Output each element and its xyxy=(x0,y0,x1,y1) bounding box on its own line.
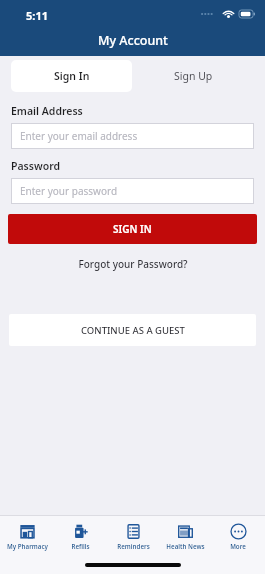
staticText: Password xyxy=(11,159,61,173)
staticText: Forgot your Password? xyxy=(78,257,188,271)
staticText: More xyxy=(230,542,246,550)
staticText: Health News xyxy=(166,542,205,550)
staticText: Enter your password xyxy=(20,184,118,198)
button[interactable]: Enter your email address xyxy=(11,123,254,149)
staticText: 5:11 xyxy=(26,8,48,23)
staticText: SIGN IN xyxy=(113,222,152,236)
button[interactable]: Reminders xyxy=(107,521,159,552)
staticText: My Pharmacy xyxy=(7,542,48,550)
button[interactable]: Enter your password xyxy=(11,178,254,204)
staticText: CONTINUE AS A GUEST xyxy=(81,324,185,337)
staticText: Refills xyxy=(71,542,90,550)
staticText: Sign In xyxy=(54,69,90,83)
button[interactable]: Refills xyxy=(54,521,106,552)
button[interactable]: Forgot your Password? xyxy=(70,255,196,273)
staticText: Reminders xyxy=(117,542,150,550)
button[interactable]: SIGN IN xyxy=(8,214,257,244)
staticText: Sign Up xyxy=(174,69,213,83)
button[interactable]: Sign In xyxy=(11,60,132,92)
button[interactable]: My Pharmacy xyxy=(1,521,53,552)
button[interactable]: More xyxy=(212,521,264,552)
button[interactable]: CONTINUE AS A GUEST xyxy=(9,314,256,346)
staticText: My Account xyxy=(98,32,168,49)
staticText: Email Address xyxy=(11,104,83,118)
staticText: Enter your email address xyxy=(20,129,138,143)
button[interactable]: Sign Up xyxy=(132,60,254,92)
button[interactable]: Health News xyxy=(159,521,211,552)
